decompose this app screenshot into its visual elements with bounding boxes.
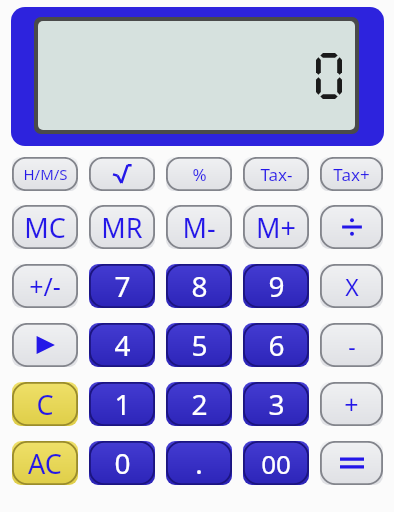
staticText: -	[348, 330, 356, 361]
staticText: 0	[114, 444, 131, 482]
button[interactable]: Equals	[320, 441, 383, 485]
button[interactable]: MR	[89, 205, 155, 249]
staticText: 8	[191, 267, 208, 305]
button[interactable]: 0	[89, 441, 155, 485]
button[interactable]: 4	[89, 323, 155, 367]
button[interactable]: Divide	[320, 205, 383, 249]
staticText: .	[195, 444, 203, 482]
button[interactable]: -	[320, 323, 383, 367]
button[interactable]: 5	[166, 323, 232, 367]
staticText: MR	[101, 209, 143, 246]
staticText: C	[36, 386, 54, 423]
button[interactable]: Tax+	[320, 157, 383, 191]
button[interactable]: M+	[243, 205, 309, 249]
button[interactable]: H/M/S	[12, 157, 78, 191]
staticText: +	[344, 387, 359, 421]
button[interactable]: C	[12, 382, 78, 426]
staticText: Tax+	[333, 163, 370, 186]
staticText: AC	[28, 445, 62, 482]
button[interactable]: AC	[12, 441, 78, 485]
staticText: 6	[268, 326, 285, 364]
button[interactable]: 7	[89, 264, 155, 308]
staticText: 4	[114, 326, 131, 364]
staticText: 00	[261, 446, 291, 481]
button[interactable]: MC	[12, 205, 78, 249]
staticText: M+	[256, 209, 296, 246]
button[interactable]: 8	[166, 264, 232, 308]
button[interactable]: 2	[166, 382, 232, 426]
button[interactable]: Tax-	[243, 157, 309, 191]
button[interactable]: M-	[166, 205, 232, 249]
button[interactable]: %	[166, 157, 232, 191]
staticText: +/-	[29, 269, 61, 303]
button[interactable]: 9	[243, 264, 309, 308]
button[interactable]: +	[320, 382, 383, 426]
button[interactable]: 3	[243, 382, 309, 426]
button[interactable]: 1	[89, 382, 155, 426]
button[interactable]: Play	[12, 323, 78, 367]
staticText: 3	[268, 385, 285, 423]
button[interactable]: .	[166, 441, 232, 485]
staticText: 9	[268, 267, 285, 305]
staticText: X	[345, 271, 359, 302]
staticText: %	[192, 163, 207, 186]
button[interactable]: 6	[243, 323, 309, 367]
button[interactable]: Square root	[89, 157, 155, 191]
staticText: 7	[114, 267, 131, 305]
button[interactable]: +/-	[12, 264, 78, 308]
staticText: M-	[182, 209, 216, 246]
staticText: 2	[191, 385, 208, 423]
staticText: 5	[191, 326, 208, 364]
button[interactable]: X	[320, 264, 383, 308]
button[interactable]: 00	[243, 441, 309, 485]
staticText: Tax-	[260, 163, 293, 186]
staticText: H/M/S	[23, 164, 68, 184]
staticText: MC	[24, 209, 66, 246]
staticText: 1	[114, 385, 131, 423]
